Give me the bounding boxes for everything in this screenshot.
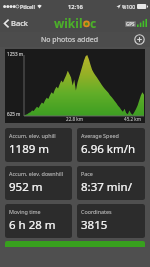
staticText: 1189 m bbox=[9, 141, 50, 157]
staticText: 3815 bbox=[81, 217, 108, 233]
staticText: Ptlcell bbox=[20, 3, 35, 10]
button[interactable]: Coordinates bbox=[77, 204, 145, 238]
staticText: wikil bbox=[54, 15, 83, 31]
button[interactable]: Moving time bbox=[5, 204, 72, 238]
button[interactable]: No photos added bbox=[0, 32, 150, 47]
button[interactable]: GPS signal bbox=[125, 19, 150, 27]
staticText: Back bbox=[11, 18, 28, 28]
staticText: 22.8 km bbox=[66, 116, 84, 122]
staticText: No photos added bbox=[41, 35, 98, 45]
button[interactable]: Accum. elev. uphill bbox=[5, 128, 72, 162]
staticText: 625 m bbox=[7, 111, 21, 117]
staticText: 6 h 28 m 17 s bbox=[9, 217, 70, 233]
button[interactable]: Accum. elev. downhill bbox=[5, 166, 72, 200]
button[interactable]: Pace bbox=[77, 166, 145, 200]
staticText: 12:16 bbox=[68, 3, 83, 11]
staticText: 8:37 min/km bbox=[81, 179, 143, 195]
staticText: Moving time bbox=[9, 208, 41, 215]
staticText: Pace bbox=[81, 170, 93, 177]
staticText: Average Speed bbox=[81, 132, 119, 139]
staticText: GPS bbox=[126, 21, 135, 27]
staticText: 45.2 km bbox=[124, 116, 142, 122]
staticText: Coordinates bbox=[81, 208, 112, 215]
staticText: Accum. elev. uphill bbox=[9, 132, 56, 139]
staticText: c bbox=[90, 15, 97, 31]
staticText: Accum. elev. downhill bbox=[9, 170, 64, 177]
staticText: 6.96 km/h bbox=[81, 141, 136, 157]
staticText: 1253 m bbox=[7, 51, 24, 57]
staticText: %100 bbox=[122, 3, 136, 10]
staticText: 952 m bbox=[9, 179, 43, 195]
button[interactable]: Average Speed bbox=[77, 128, 145, 162]
button[interactable]: Back bbox=[0, 15, 32, 31]
button[interactable]: Add photo bbox=[134, 34, 145, 45]
